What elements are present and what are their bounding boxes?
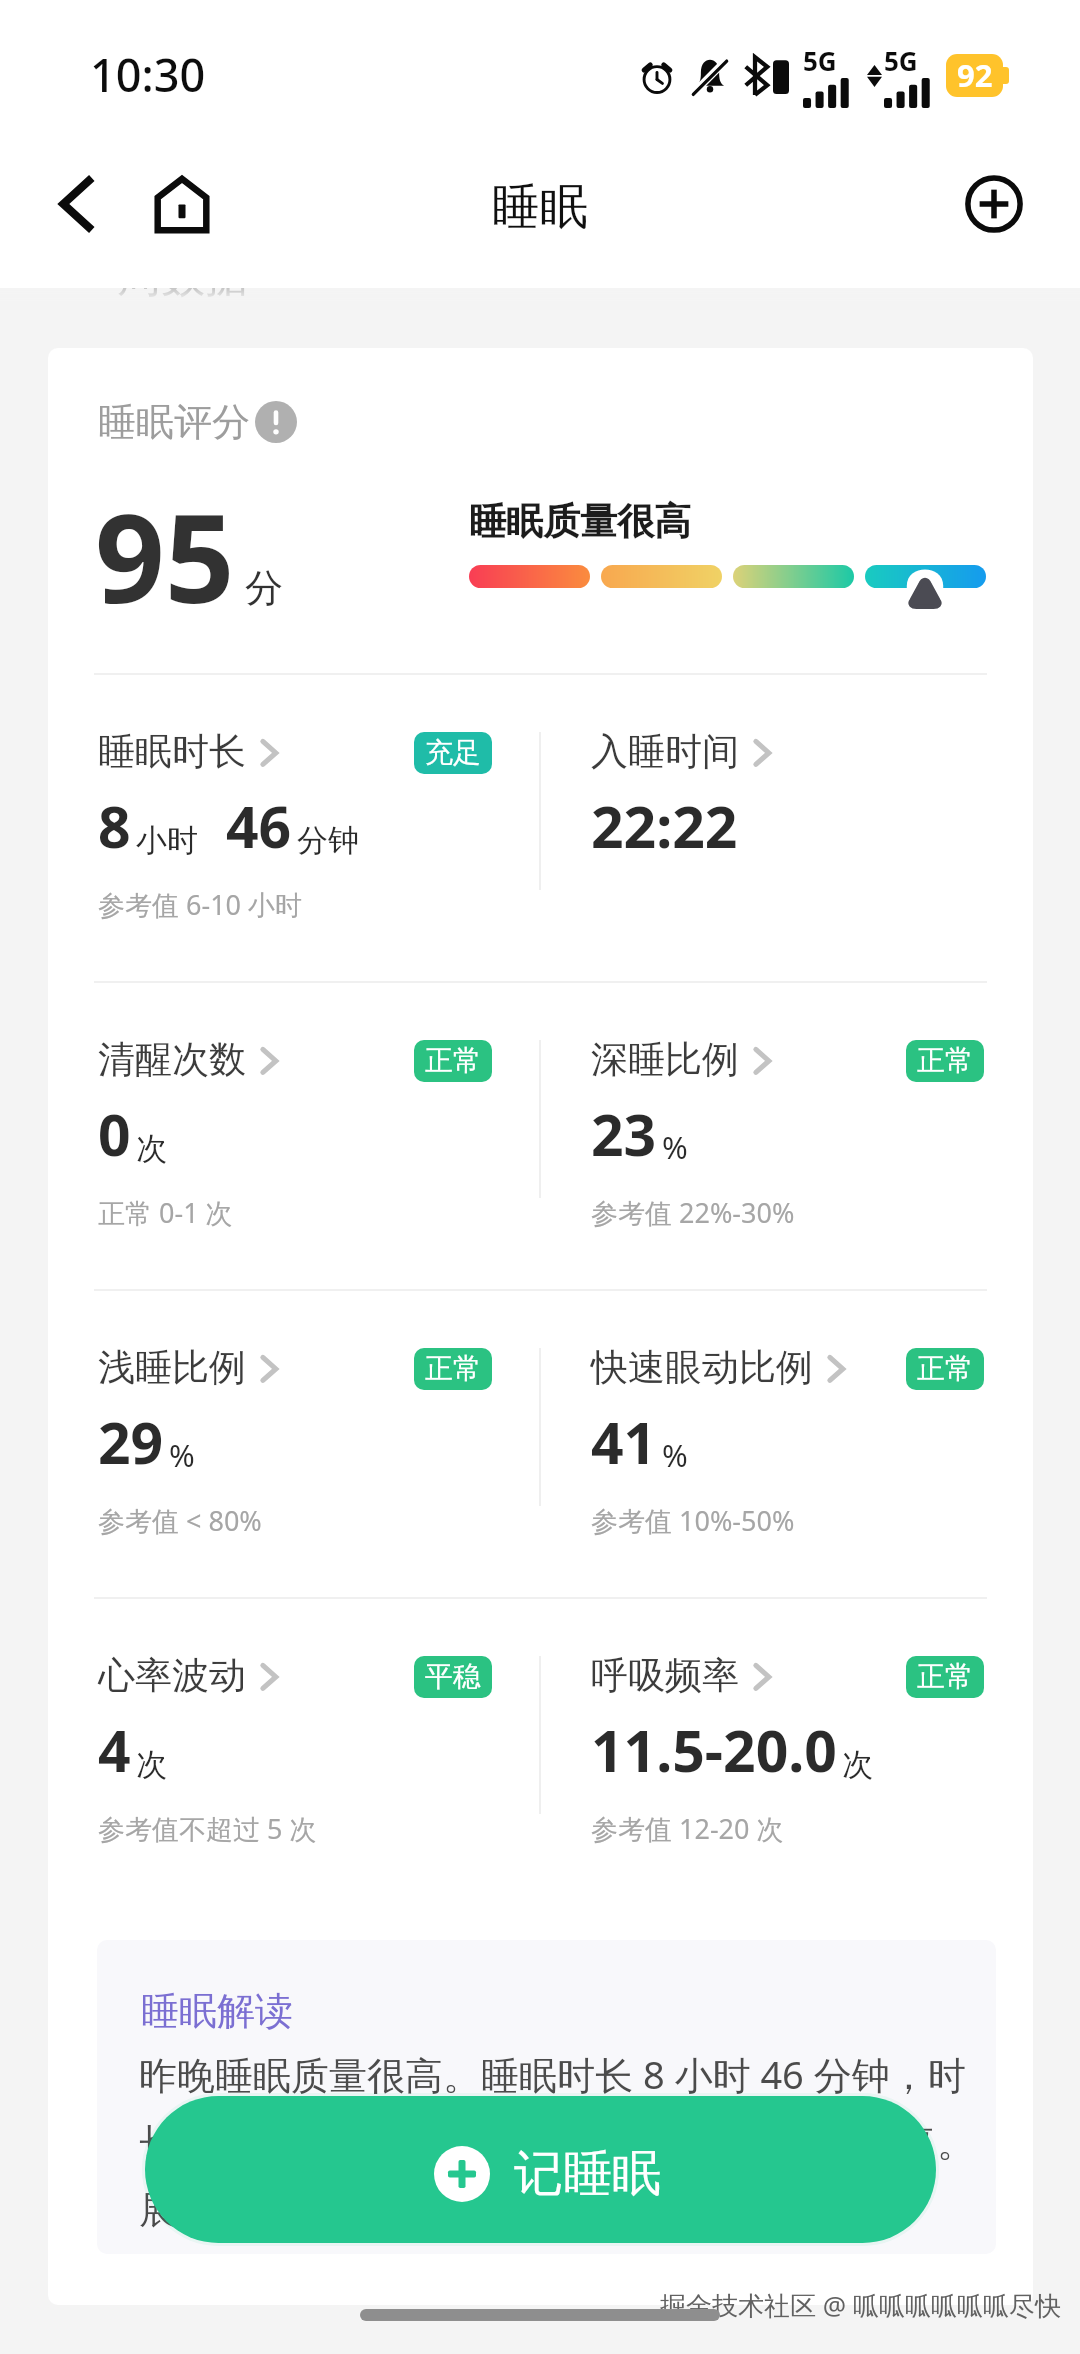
staticText: 次 bbox=[136, 1745, 167, 1784]
staticText: 浅睡比例 bbox=[98, 1344, 246, 1391]
staticText: 呼吸频率 bbox=[591, 1652, 739, 1699]
staticText: 快速眼动比例 bbox=[591, 1344, 813, 1391]
staticText: 睡眠质量很高 bbox=[469, 498, 691, 545]
staticText: % bbox=[169, 1434, 195, 1476]
staticText: 掘金技术社区 @ 呱呱呱呱呱呱尽快 bbox=[660, 2287, 1061, 2323]
button[interactable]: 入睡时间 bbox=[591, 728, 987, 924]
staticText: 一周数据 bbox=[73, 249, 249, 304]
staticText: 5G bbox=[803, 43, 837, 78]
staticText: 充足 bbox=[425, 735, 481, 770]
staticText: 5G bbox=[884, 43, 918, 78]
staticText: 参考值 22%-30% bbox=[591, 1194, 795, 1231]
staticText: 95 bbox=[95, 473, 235, 639]
staticText: 分 bbox=[245, 564, 283, 612]
button[interactable]: 睡眠时长 bbox=[98, 728, 528, 924]
staticText: 8 bbox=[98, 787, 131, 865]
staticText: 记睡眠 bbox=[514, 2143, 661, 2205]
staticText: 睡眠评分 bbox=[98, 398, 250, 446]
staticText: 参考值 10%-50% bbox=[591, 1502, 795, 1539]
staticText: 0 bbox=[98, 1095, 131, 1173]
staticText: 参考值 6-10 小时 bbox=[98, 886, 303, 923]
staticText: 平稳 bbox=[425, 1659, 481, 1694]
staticText: % bbox=[662, 1126, 688, 1168]
staticText: 小时 bbox=[136, 821, 198, 860]
staticText: 深睡比例 bbox=[591, 1036, 739, 1083]
staticText: 心率波动 bbox=[98, 1652, 246, 1699]
button[interactable]: 记睡眠 bbox=[145, 2096, 936, 2243]
staticText: 次 bbox=[136, 1129, 167, 1168]
staticText: 41 bbox=[591, 1403, 657, 1481]
staticText: 清醒次数 bbox=[98, 1036, 246, 1083]
button[interactable]: 快速眼动比例 bbox=[591, 1344, 987, 1540]
button[interactable]: 浅睡比例 bbox=[98, 1344, 528, 1540]
staticText: 睡眠时长 bbox=[98, 728, 246, 775]
staticText: 正常 bbox=[917, 1659, 973, 1694]
staticText: 次 bbox=[842, 1745, 873, 1784]
button[interactable]: Back bbox=[36, 162, 120, 246]
staticText: 睡眠解读 bbox=[141, 1987, 293, 2035]
staticText: 11.5-20.0 bbox=[591, 1711, 837, 1789]
staticText: 22:22 bbox=[591, 787, 738, 865]
staticText: 参考值 < 80% bbox=[98, 1502, 262, 1539]
staticText: 正常 0-1 次 bbox=[98, 1194, 233, 1231]
staticText: 正常 bbox=[425, 1043, 481, 1078]
staticText: 23 bbox=[591, 1095, 657, 1173]
staticText: 睡眠 bbox=[492, 177, 588, 237]
button[interactable]: Add bbox=[950, 160, 1038, 248]
staticText: 分钟 bbox=[297, 821, 359, 860]
staticText: 昨晚睡眠质量很高。睡眠时长 8 小时 46 分钟，时长合适，处于正常参考范围内，… bbox=[139, 2048, 977, 2234]
button[interactable]: 清醒次数 bbox=[98, 1036, 528, 1232]
button[interactable]: Home bbox=[138, 160, 226, 248]
staticText: 92 bbox=[957, 54, 993, 96]
staticText: 46 bbox=[226, 787, 292, 865]
staticText: 正常 bbox=[917, 1043, 973, 1078]
button[interactable]: 心率波动 bbox=[98, 1652, 528, 1848]
staticText: 入睡时间 bbox=[591, 728, 739, 775]
button[interactable]: 呼吸频率 bbox=[591, 1652, 987, 1848]
staticText: 29 bbox=[98, 1403, 164, 1481]
staticText: 正常 bbox=[425, 1351, 481, 1386]
staticText: 参考值 12-20 次 bbox=[591, 1810, 784, 1847]
staticText: 4 bbox=[98, 1711, 131, 1789]
staticText: % bbox=[662, 1434, 688, 1476]
button[interactable]: 深睡比例 bbox=[591, 1036, 987, 1232]
staticText: 正常 bbox=[917, 1351, 973, 1386]
button[interactable]: Info bbox=[254, 400, 298, 444]
staticText: 10:30 bbox=[90, 44, 206, 105]
staticText: 参考值不超过 5 次 bbox=[98, 1810, 317, 1847]
